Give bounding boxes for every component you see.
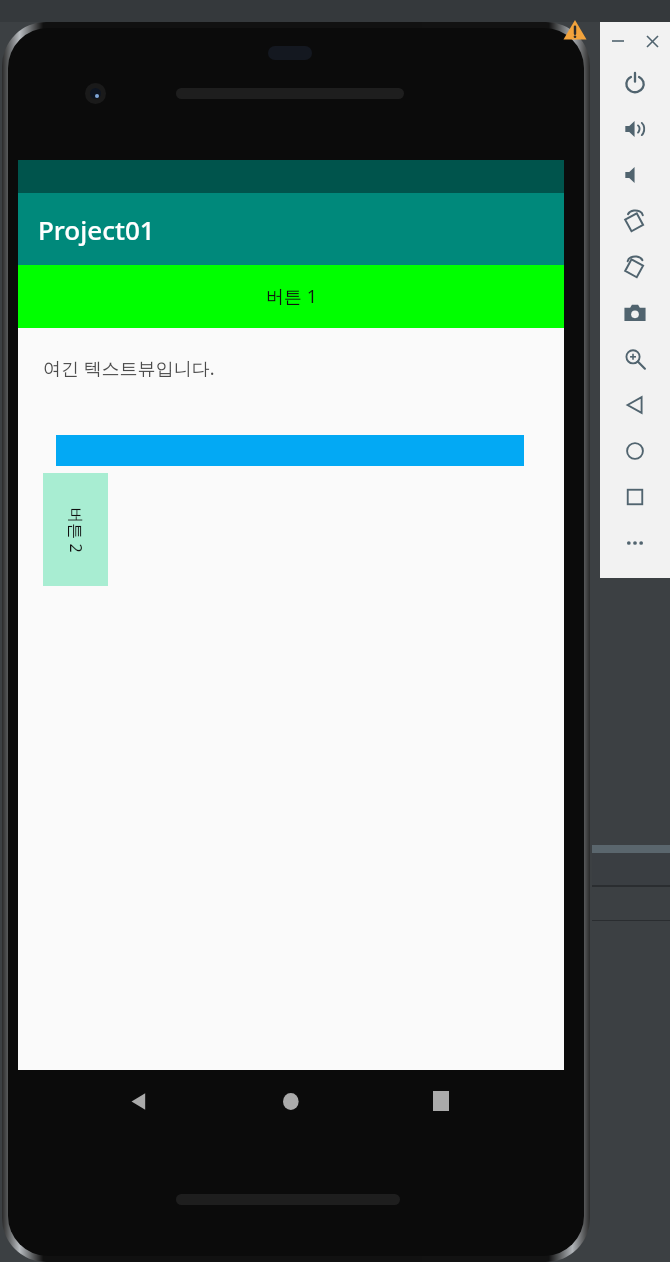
- button[interactable]: Home: [600, 428, 670, 474]
- button[interactable]: Take screenshot: [600, 290, 670, 336]
- staticText: 버튼 1: [266, 284, 317, 309]
- button[interactable]: Volume up: [600, 106, 670, 152]
- button[interactable]: Zoom: [600, 336, 670, 382]
- button[interactable]: Rotate left: [600, 198, 670, 244]
- button[interactable]: Home: [270, 1080, 312, 1122]
- button[interactable]: Power: [600, 60, 670, 106]
- staticText: 버튼 2: [65, 507, 87, 553]
- other: Warning: [563, 18, 587, 42]
- button[interactable]: Back: [600, 382, 670, 428]
- button[interactable]: Overview: [600, 474, 670, 520]
- button[interactable]: Volume down: [600, 152, 670, 198]
- button[interactable]: Rotate right: [600, 244, 670, 290]
- staticText: 여긴 텍스트뷰입니다.: [43, 356, 215, 381]
- button[interactable]: Minimize: [600, 22, 635, 60]
- button[interactable]: 버튼 1: [18, 265, 564, 328]
- button[interactable]: Recent apps: [420, 1080, 462, 1122]
- button[interactable]: Close: [635, 22, 670, 60]
- button[interactable]: Back: [118, 1080, 160, 1122]
- staticText: Project01: [38, 212, 155, 247]
- button[interactable]: 버튼 2: [43, 473, 108, 586]
- button[interactable]: More: [600, 520, 670, 566]
